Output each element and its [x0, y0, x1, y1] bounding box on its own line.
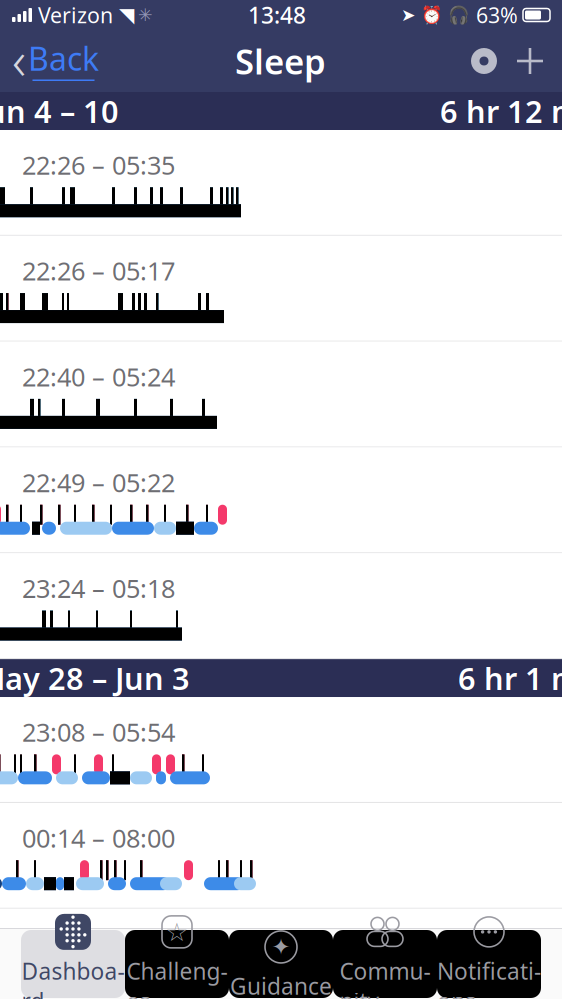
staticText: Sleep: [235, 38, 326, 84]
staticText: 00:14 – 08:00: [22, 821, 175, 855]
button[interactable]: Community: [333, 930, 437, 998]
staticText: 22:40 – 05:24: [22, 360, 175, 393]
staticText: 23:24 – 05:18: [22, 571, 175, 605]
staticText: 13:48: [248, 0, 306, 30]
button[interactable]: Settings: [462, 39, 506, 83]
button[interactable]: 6/5: [0, 447, 562, 553]
button[interactable]: ‹: [0, 24, 99, 98]
staticText: 22:27 – 04:56: [22, 927, 175, 960]
button[interactable]: ✦: [229, 930, 333, 998]
staticText: ➤: [401, 5, 416, 25]
staticText: 6 hr 1 min avg: [458, 658, 562, 698]
staticText: 63%: [476, 1, 518, 29]
staticText: ⏰: [421, 5, 443, 25]
staticText: 🎧: [448, 5, 470, 25]
staticText: 22:49 – 05:22: [22, 466, 175, 499]
staticText: 22:26 – 05:17: [22, 254, 175, 287]
staticText: Back: [28, 37, 99, 79]
button[interactable]: 6/1: [0, 909, 562, 999]
button[interactable]: 6/8: [0, 130, 562, 236]
staticText: ✳: [138, 5, 153, 25]
staticText: 6 hr 12 min avg: [440, 91, 562, 131]
staticText: Dashboard: [21, 956, 124, 999]
staticText: Community: [339, 956, 430, 999]
staticText: Jun 4 – 10: [0, 91, 119, 131]
button[interactable]: Add: [506, 39, 562, 83]
staticText: ◥: [119, 4, 134, 26]
staticText: Challenges: [126, 956, 227, 999]
button[interactable]: 6/6: [0, 342, 562, 447]
staticText: 22:26 – 05:35: [22, 148, 175, 182]
button[interactable]: 6/7: [0, 236, 562, 342]
staticText: May 28 – Jun 3: [0, 658, 190, 698]
button[interactable]: Dashboard: [21, 930, 125, 998]
button[interactable]: Notifications: [437, 930, 541, 998]
staticText: Guidance: [230, 971, 332, 999]
button[interactable]: ☆: [125, 930, 229, 998]
staticText: Verizon: [38, 1, 113, 29]
button[interactable]: 6/2: [0, 803, 562, 909]
button[interactable]: 6/3: [0, 697, 562, 803]
staticText: ☆: [165, 917, 188, 946]
staticText: ‹: [12, 24, 26, 94]
staticText: 23:08 – 05:54: [22, 715, 175, 749]
staticText: Notifications: [437, 956, 541, 999]
staticText: ✦: [271, 934, 290, 960]
button[interactable]: 6/4: [0, 553, 562, 659]
